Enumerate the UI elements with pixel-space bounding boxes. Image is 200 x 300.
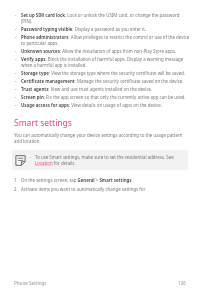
staticText: Smart settings <box>14 117 72 129</box>
staticText: - <box>15 26 17 32</box>
button[interactable]: - <box>15 48 190 54</box>
button[interactable]: 1 <box>14 177 190 183</box>
button[interactable]: - <box>15 26 190 32</box>
staticText: - <box>15 70 17 76</box>
staticText: Unknown sources: Allow the installation … <box>21 48 177 54</box>
staticText: - <box>15 78 17 84</box>
button[interactable]: - <box>15 56 190 68</box>
button[interactable]: - <box>15 34 190 46</box>
button[interactable]: - <box>15 78 190 84</box>
staticText: - <box>15 56 17 62</box>
staticText: Screen pin: Fix the app screen so that o… <box>21 94 186 100</box>
staticText: Trust agents: View and use trust agents … <box>21 86 153 92</box>
staticText: Verify apps: Block the installation of h… <box>21 56 190 68</box>
staticText: Storage type: View the storage type wher… <box>21 70 186 76</box>
staticText: To use Smart settings, make sure to set … <box>35 154 183 166</box>
button[interactable]: - <box>15 94 190 100</box>
staticText: - <box>15 12 17 18</box>
staticText: Password typing visible: Display a passw… <box>21 26 147 32</box>
staticText: - <box>15 102 17 108</box>
staticText: 1 <box>14 177 17 183</box>
staticText: - <box>15 34 17 40</box>
staticText: - <box>15 48 17 54</box>
staticText: Phone administrators: Allow privileges t… <box>21 34 190 46</box>
button[interactable]: - <box>15 102 190 108</box>
staticText: Usage access for apps: View details on u… <box>21 102 162 108</box>
staticText: Activate items you want to automatically… <box>21 186 146 192</box>
staticText: Phone Settings <box>14 280 47 286</box>
button[interactable]: Note <box>15 154 183 166</box>
staticText: On the settings screen, tap General > Sm… <box>21 177 133 183</box>
staticText: 126 <box>178 280 186 286</box>
staticText: Set up SIM card lock: Lock or unlock the… <box>21 12 190 24</box>
staticText: · <box>30 154 32 160</box>
other: Note <box>15 155 26 166</box>
button[interactable]: - <box>15 70 190 76</box>
button[interactable]: - <box>15 86 190 92</box>
staticText: You can automatically change your device… <box>14 132 188 144</box>
button[interactable]: - <box>15 12 190 24</box>
button[interactable]: 2 <box>14 186 190 192</box>
staticText: - <box>15 86 17 92</box>
staticText: - <box>15 94 17 100</box>
staticText: 2 <box>14 186 17 192</box>
staticText: Certificate management: Manage the secur… <box>21 78 184 84</box>
